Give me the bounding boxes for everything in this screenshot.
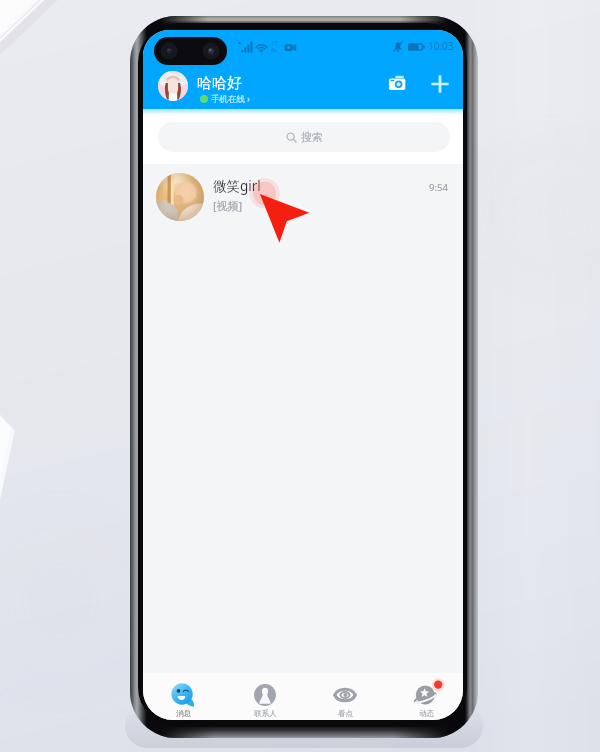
button[interactable]: Camera xyxy=(388,74,407,93)
button[interactable]: 消息 xyxy=(146,673,220,720)
staticText: 77 xyxy=(271,39,278,46)
staticText: 消息 xyxy=(176,709,191,718)
button[interactable]: 微笑girl xyxy=(143,164,463,228)
staticText: 微笑girl xyxy=(213,177,261,195)
staticText: 8s xyxy=(271,46,277,53)
button[interactable]: 动态 xyxy=(389,673,463,720)
button[interactable]: 手机在线 › xyxy=(200,93,250,105)
staticText: 哈哈好 xyxy=(197,74,242,93)
button[interactable]: Profile avatar xyxy=(158,71,188,101)
staticText: 看点 xyxy=(338,709,353,718)
button[interactable]: 搜索 xyxy=(158,122,450,152)
staticText: 联系人 xyxy=(254,709,277,718)
button[interactable]: 联系人 xyxy=(228,673,302,720)
button[interactable]: Add xyxy=(431,75,449,93)
staticText: 手机在线 › xyxy=(211,93,250,105)
staticText: 搜索 xyxy=(301,130,323,144)
staticText: 10:03 xyxy=(428,39,454,53)
staticText: 9:54 xyxy=(429,181,448,194)
button[interactable]: 看点 xyxy=(308,673,382,720)
staticText: 动态 xyxy=(419,709,434,718)
staticText: [视频] xyxy=(213,198,243,213)
